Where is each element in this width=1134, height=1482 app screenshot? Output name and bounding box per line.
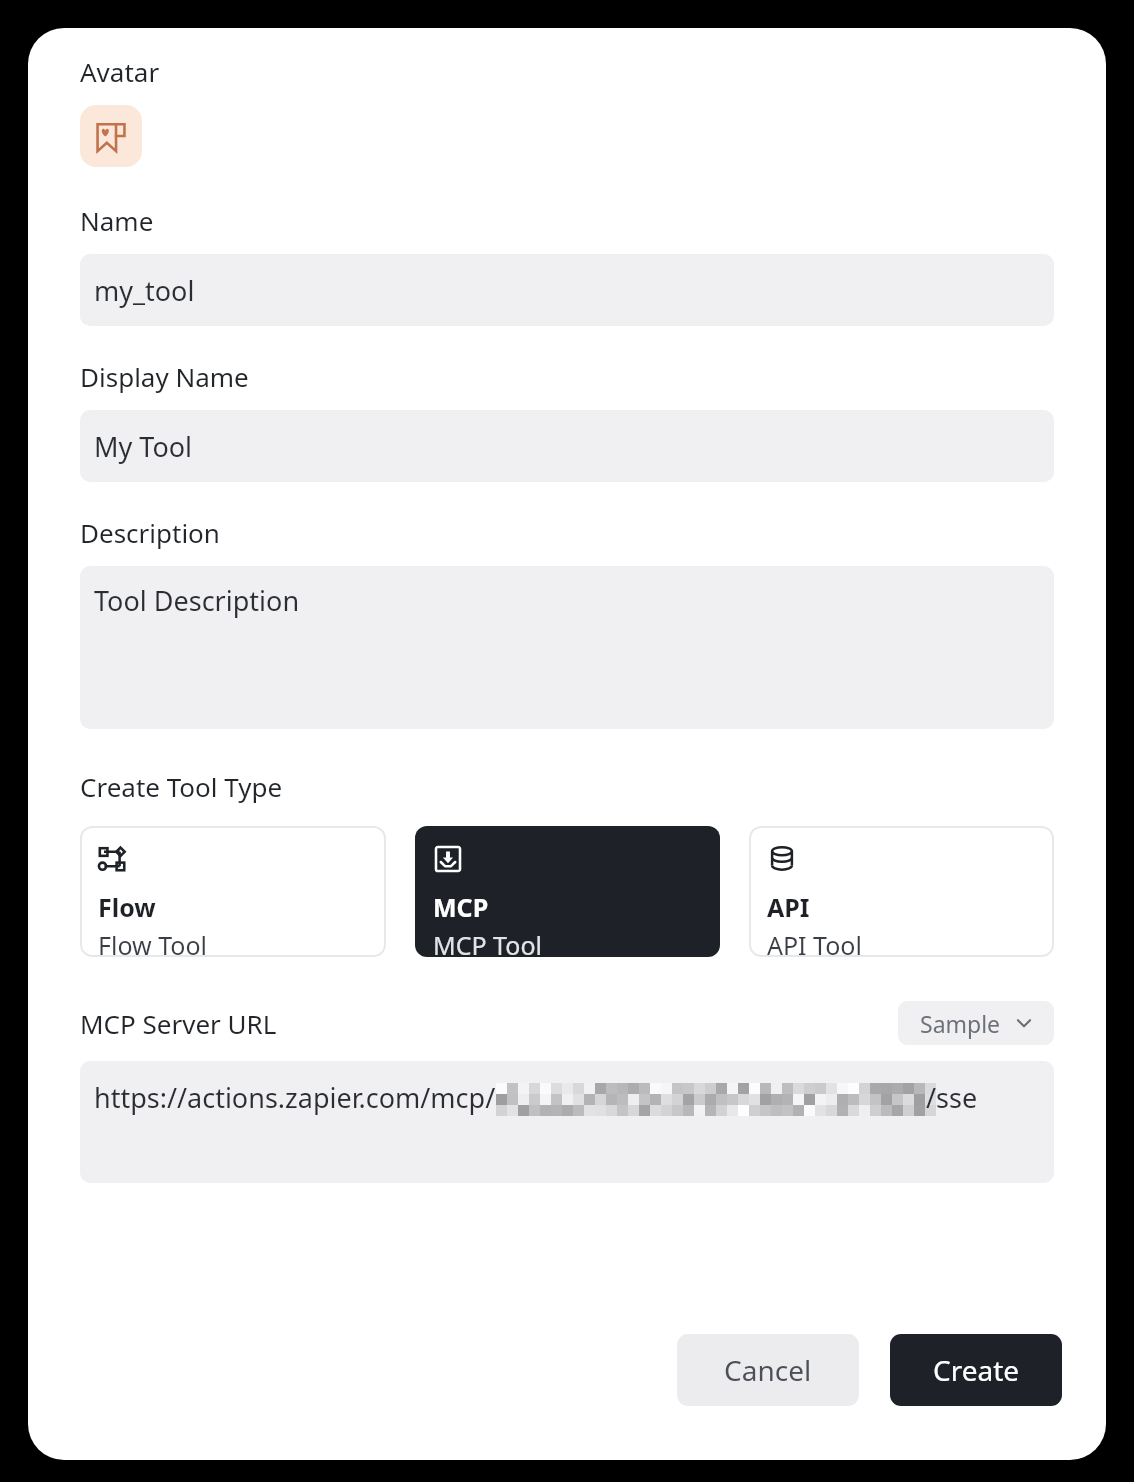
button[interactable]: Cancel (677, 1334, 859, 1406)
staticText: Flow (98, 890, 156, 924)
staticText: Cancel (724, 1351, 812, 1389)
staticText: Create (933, 1351, 1020, 1389)
staticText: https://actions.zapier.com/mcp/ (94, 1079, 496, 1116)
button[interactable]: my_tool (80, 254, 1054, 326)
staticText: MCP Server URL (80, 1006, 277, 1041)
button[interactable]: My Tool (80, 410, 1054, 482)
button[interactable]: API (749, 826, 1054, 957)
staticText: Description (80, 515, 220, 550)
button[interactable]: Choose avatar (80, 105, 142, 167)
staticText: Create Tool Type (80, 769, 283, 804)
button[interactable]: https://actions.zapier.com/mcp/ (80, 1061, 1054, 1183)
staticText: My Tool (94, 428, 193, 465)
button[interactable]: Flow (80, 826, 386, 957)
staticText: API Tool (767, 928, 862, 957)
staticText: Avatar (80, 54, 160, 89)
button[interactable]: Tool Description (80, 566, 1054, 729)
staticText: Sample (920, 1008, 1001, 1039)
staticText: MCP Tool (433, 928, 542, 957)
staticText: Flow Tool (98, 928, 208, 957)
staticText: my_tool (94, 272, 195, 309)
staticText: Name (80, 203, 154, 238)
staticText: API (767, 890, 810, 924)
staticText: MCP (433, 890, 489, 924)
staticText: Display Name (80, 359, 249, 394)
staticText: Tool Description (94, 582, 300, 619)
button[interactable]: Create (890, 1334, 1062, 1406)
button[interactable]: MCP (415, 826, 720, 957)
staticText: /sse (926, 1079, 978, 1116)
button[interactable]: Sample (898, 1001, 1054, 1045)
